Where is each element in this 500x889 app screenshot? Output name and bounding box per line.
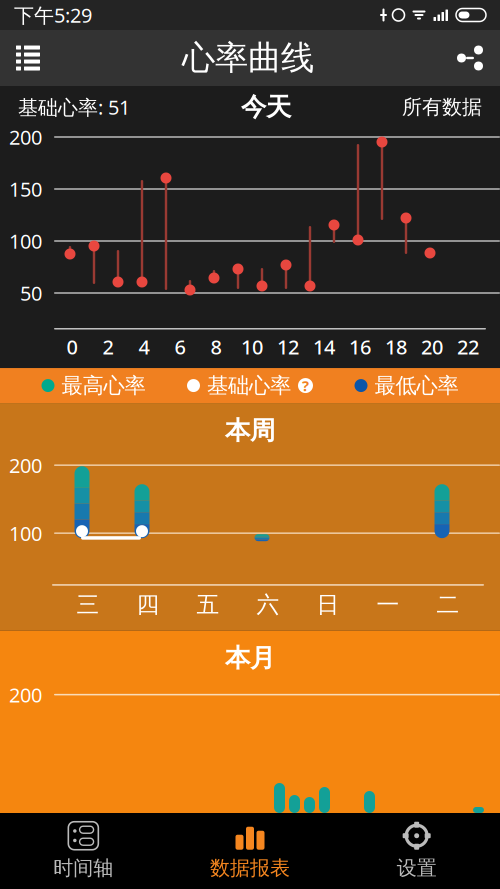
staticText: 一: [376, 591, 399, 618]
staticText: 0: [66, 333, 77, 360]
staticText: 22: [457, 333, 479, 360]
button[interactable]: 设置: [333, 812, 500, 889]
staticText: 二: [436, 591, 459, 618]
staticText: 4: [138, 333, 149, 360]
staticText: 设置: [397, 856, 437, 880]
button[interactable]: 数据报表: [167, 812, 333, 889]
staticText: ?: [302, 376, 309, 395]
staticText: 四: [136, 591, 159, 618]
staticText: 本周: [225, 415, 275, 446]
staticText: 150: [9, 176, 42, 202]
staticText: 18: [385, 333, 407, 360]
staticText: 12: [277, 333, 299, 360]
staticText: 数据报表: [210, 856, 290, 880]
staticText: 50: [20, 280, 42, 306]
staticText: 基础心率: [207, 372, 291, 399]
button[interactable]: 所有数据: [402, 95, 482, 119]
staticText: 五: [196, 591, 219, 618]
button[interactable]: 列表: [0, 30, 56, 85]
staticText: 10: [241, 333, 263, 360]
staticText: 200: [9, 124, 42, 150]
staticText: 200: [9, 452, 42, 478]
button[interactable]: 最低心率: [354, 372, 458, 399]
staticText: 16: [349, 333, 371, 360]
staticText: 心率曲线: [182, 37, 314, 78]
staticText: 所有数据: [402, 95, 482, 119]
button[interactable]: 基础心率: [187, 372, 313, 399]
staticText: 日: [316, 591, 339, 618]
staticText: 三: [76, 591, 99, 618]
staticText: 最低心率: [374, 372, 458, 399]
staticText: 2: [102, 333, 113, 360]
staticText: 100: [9, 228, 42, 254]
button[interactable]: 最高心率: [41, 372, 145, 399]
button[interactable]: 时间轴: [0, 812, 167, 889]
staticText: 100: [9, 520, 42, 546]
staticText: 基础心率: 51: [18, 94, 130, 120]
staticText: 200: [9, 681, 42, 708]
staticText: 最高心率: [61, 372, 145, 399]
staticText: 本月: [225, 642, 275, 674]
staticText: 8: [210, 333, 221, 360]
staticText: 14: [313, 333, 335, 360]
staticText: 时间轴: [53, 856, 113, 880]
staticText: 20: [421, 333, 443, 360]
staticText: 6: [174, 333, 185, 360]
button[interactable]: 分享: [440, 30, 500, 86]
staticText: 六: [256, 591, 279, 618]
staticText: 下午5:29: [14, 2, 92, 28]
staticText: 今天: [241, 91, 291, 122]
